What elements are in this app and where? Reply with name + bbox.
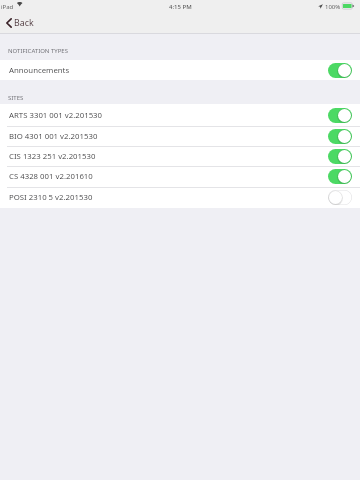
- button[interactable]: POSI 2310 5 v2.201530: [0, 187, 360, 208]
- staticText: Back: [14, 17, 34, 29]
- staticText: CIS 1323 251 v2.201530: [9, 151, 96, 162]
- staticText: iPad: [1, 3, 14, 11]
- staticText: CS 4328 001 v2.201610: [9, 171, 93, 182]
- staticText: NOTIFICATION TYPES: [8, 47, 68, 55]
- button[interactable]: Switch on: [328, 169, 352, 184]
- staticText: POSI 2310 5 v2.201530: [9, 192, 93, 203]
- button[interactable]: CS 4328 001 v2.201610: [0, 166, 360, 187]
- button[interactable]: Back: [0, 15, 46, 34]
- button[interactable]: Switch on: [328, 108, 352, 123]
- button[interactable]: Switch on: [328, 63, 352, 78]
- button[interactable]: ARTS 3301 001 v2.201530: [0, 104, 360, 126]
- button[interactable]: Announcements: [0, 60, 360, 80]
- staticText: BIO 4301 001 v2.201530: [9, 131, 98, 142]
- staticText: ARTS 3301 001 v2.201530: [9, 110, 103, 121]
- staticText: Announcements: [9, 65, 70, 76]
- button[interactable]: CIS 1323 251 v2.201530: [0, 146, 360, 166]
- button[interactable]: Switch off: [328, 190, 352, 205]
- button[interactable]: Switch on: [328, 129, 352, 144]
- staticText: 100%: [325, 3, 341, 11]
- staticText: SITES: [8, 94, 24, 102]
- button[interactable]: BIO 4301 001 v2.201530: [0, 126, 360, 146]
- button[interactable]: Switch on: [328, 149, 352, 164]
- staticText: 4:15 PM: [169, 3, 192, 11]
